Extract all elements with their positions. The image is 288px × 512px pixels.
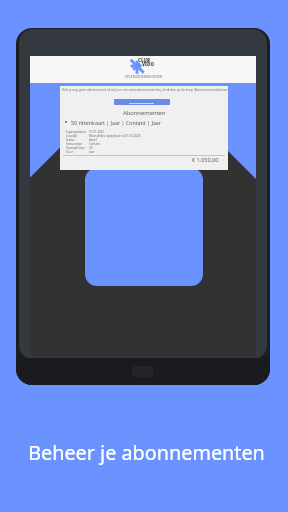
staticText: 30 xyxy=(89,146,93,150)
staticText: Actief xyxy=(89,138,97,142)
staticText: Beheer je abonnementen xyxy=(28,439,265,466)
staticText: Duur xyxy=(66,150,89,154)
staticText: 01-01-2021 xyxy=(89,130,105,134)
staticText: Heb je nog geen abonnement of wil je er … xyxy=(62,88,229,92)
staticText: Ingangsdatum xyxy=(66,130,89,134)
staticText: CLUB xyxy=(138,57,150,63)
staticText: Maandelijks opzegbaar na 01-03-2026 xyxy=(89,134,141,138)
staticText: Abonnementen xyxy=(123,109,166,117)
staticText: SPLENDIDEINDHOVEN xyxy=(125,74,163,79)
staticText: Jaar xyxy=(89,150,95,154)
staticText: Contant xyxy=(89,142,100,146)
staticText: Factuurtype xyxy=(66,142,89,146)
staticText: Looptijd xyxy=(66,134,89,138)
staticText: Opzegtermijn xyxy=(66,146,89,150)
staticText: € 1.050,00 xyxy=(192,156,219,163)
staticText: 50 rittenkaart | Jaar | Contant | Jaar xyxy=(71,119,162,126)
staticText: Abonnement afsluiten xyxy=(129,101,155,104)
button[interactable]: Abonnement afsluiten xyxy=(114,99,170,105)
staticText: VIDO xyxy=(142,61,154,67)
staticText: Status xyxy=(66,138,89,142)
